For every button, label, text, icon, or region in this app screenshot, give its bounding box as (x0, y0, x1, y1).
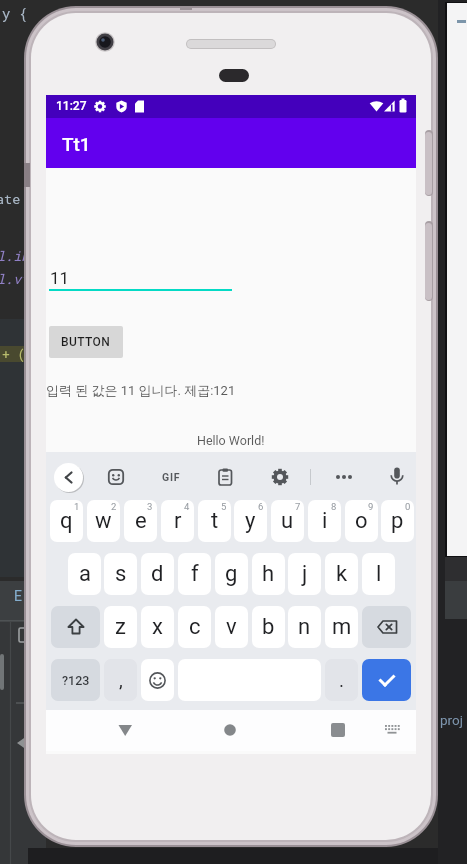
staticText: Hello World! (197, 433, 265, 448)
button[interactable]: c (178, 606, 211, 648)
button[interactable]: s (104, 553, 137, 595)
button[interactable]: GIF (158, 467, 184, 487)
button[interactable]: m (325, 606, 358, 648)
button[interactable] (270, 467, 290, 487)
button[interactable]: o (345, 500, 378, 542)
button[interactable]: y (234, 500, 267, 542)
staticText: 11:27 (56, 99, 87, 113)
staticText: m (332, 614, 352, 640)
staticText: l.in (0, 247, 30, 265)
staticText: 4 (184, 501, 190, 512)
staticText: , (119, 669, 123, 691)
button[interactable] (51, 606, 100, 648)
staticText: j (302, 561, 308, 587)
button[interactable] (106, 467, 126, 487)
button[interactable]: d (141, 553, 174, 595)
staticText: y { (2, 4, 28, 22)
staticText: s (115, 561, 127, 587)
button[interactable] (322, 714, 354, 746)
staticText: r (174, 508, 182, 534)
staticText: w (95, 508, 112, 534)
staticText: o (355, 508, 368, 534)
staticText: g (225, 561, 238, 587)
button[interactable] (362, 606, 411, 648)
button[interactable]: e (124, 500, 157, 542)
button[interactable]: w (87, 500, 120, 542)
staticText: f (191, 561, 199, 587)
staticText: 1 (74, 501, 80, 512)
button[interactable]: a (68, 553, 101, 595)
button[interactable]: p (381, 500, 414, 542)
button[interactable]: Tt1 (46, 118, 416, 168)
button[interactable] (141, 659, 174, 701)
staticText: b (262, 614, 275, 640)
button[interactable]: . (325, 659, 358, 701)
staticText: l.vt (0, 270, 30, 288)
button[interactable]: k (325, 553, 358, 595)
button[interactable]: t (198, 500, 231, 542)
staticText: 5 (221, 501, 227, 512)
staticText: i (322, 508, 328, 534)
button[interactable]: n (288, 606, 321, 648)
staticText: 0 (405, 501, 411, 512)
button[interactable] (214, 714, 246, 746)
button[interactable]: x (141, 606, 174, 648)
button[interactable]: r (161, 500, 194, 542)
button[interactable]: z (104, 606, 137, 648)
staticText: k (336, 561, 348, 587)
staticText: GIF (162, 471, 181, 483)
staticText: BUTTON (61, 335, 111, 349)
button[interactable] (109, 714, 141, 746)
staticText: x (152, 614, 163, 640)
staticText: Tt1 (62, 133, 91, 155)
button[interactable]: j (288, 553, 321, 595)
staticText: ?123 (62, 673, 90, 688)
staticText: proj (440, 712, 463, 728)
staticText: n (298, 614, 311, 640)
staticText: 9 (368, 501, 374, 512)
staticText: . (339, 669, 345, 691)
staticText: 8 (331, 501, 337, 512)
staticText: z (115, 614, 126, 640)
staticText: h (262, 561, 275, 587)
staticText: 7 (295, 501, 301, 512)
button[interactable] (376, 714, 408, 746)
staticText: + ( (2, 345, 26, 362)
button[interactable] (54, 463, 83, 492)
button[interactable]: q (50, 500, 83, 542)
button[interactable] (46, 255, 246, 300)
staticText: ate (0, 190, 21, 208)
button[interactable]: u (271, 500, 304, 542)
button[interactable]: g (215, 553, 248, 595)
staticText: t (211, 508, 219, 534)
staticText: 6 (258, 501, 264, 512)
staticText: l (376, 561, 382, 587)
button[interactable] (387, 465, 407, 489)
button[interactable]: b (252, 606, 285, 648)
staticText: e (135, 508, 147, 534)
button[interactable] (333, 467, 355, 487)
staticText: p (391, 508, 404, 534)
staticText: d (151, 561, 164, 587)
button[interactable]: h (252, 553, 285, 595)
button[interactable]: f (178, 553, 211, 595)
staticText: q (60, 508, 73, 534)
staticText: E (14, 588, 22, 604)
button[interactable] (362, 659, 411, 701)
button[interactable] (215, 467, 235, 487)
staticText: 3 (147, 501, 153, 512)
staticText: c (189, 614, 201, 640)
staticText: u (281, 508, 294, 534)
staticText: y (245, 508, 256, 534)
button[interactable]: v (215, 606, 248, 648)
staticText: 2 (111, 501, 117, 512)
staticText: a (79, 561, 91, 587)
button[interactable]: ?123 (51, 659, 100, 701)
button[interactable]: , (104, 659, 137, 701)
button[interactable]: BUTTON (49, 326, 123, 358)
button[interactable]: i (308, 500, 341, 542)
staticText: v (226, 614, 237, 640)
staticText: 11 (50, 268, 70, 288)
button[interactable]: l (362, 553, 395, 595)
